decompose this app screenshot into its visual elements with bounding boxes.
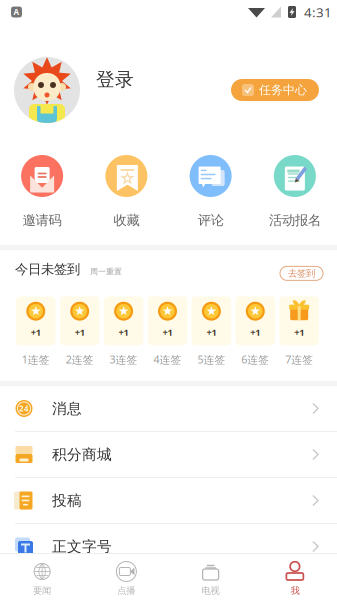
staticText: +1: [75, 326, 85, 338]
staticText: 去签到: [288, 268, 315, 279]
staticText: 任务中心: [259, 83, 307, 97]
staticText: 登录: [96, 68, 134, 91]
staticText: 电视: [202, 585, 220, 596]
staticText: 7连签: [285, 352, 313, 367]
button[interactable]: 投稿: [0, 478, 337, 523]
button[interactable]: 要闻: [0, 553, 84, 600]
staticText: 5连签: [197, 352, 225, 367]
staticText: 3连签: [110, 352, 138, 367]
button[interactable]: 我: [253, 553, 337, 600]
button[interactable]: 去签到: [280, 263, 323, 277]
staticText: 要闻: [33, 585, 51, 596]
button[interactable]: 活动报名: [253, 155, 337, 228]
button[interactable]: 评论: [168, 155, 253, 228]
staticText: +1: [31, 326, 41, 338]
button[interactable]: 邀请码: [0, 155, 84, 228]
button[interactable]: 收藏: [84, 155, 168, 228]
staticText: 6连签: [241, 352, 269, 367]
button[interactable]: 积分商城: [0, 432, 337, 477]
staticText: 消息: [52, 399, 82, 417]
button[interactable]: 24: [0, 386, 337, 431]
staticText: +1: [250, 326, 260, 338]
staticText: +1: [294, 326, 304, 338]
button[interactable]: 电视: [168, 553, 253, 600]
button[interactable]: 点播: [84, 553, 168, 600]
staticText: 正文字号: [52, 537, 112, 555]
staticText: 周一重置: [90, 267, 122, 276]
staticText: 邀请码: [23, 212, 62, 228]
staticText: 我: [290, 585, 299, 596]
staticText: 评论: [198, 212, 224, 228]
staticText: +1: [162, 326, 172, 338]
staticText: 今日未签到: [15, 261, 80, 277]
staticText: 4连签: [153, 352, 181, 367]
staticText: 点播: [117, 585, 135, 596]
staticText: +1: [206, 326, 216, 338]
staticText: 2连签: [66, 352, 94, 367]
staticText: 投稿: [52, 491, 82, 509]
staticText: 积分商城: [52, 445, 112, 463]
staticText: 4:31: [304, 3, 332, 21]
button[interactable]: 任务中心: [231, 79, 319, 101]
staticText: 收藏: [113, 212, 139, 228]
staticText: 1连签: [22, 352, 50, 367]
staticText: 活动报名: [269, 212, 321, 228]
staticText: +1: [119, 326, 129, 338]
staticText: 24: [19, 403, 29, 414]
staticText: A: [13, 7, 19, 17]
button[interactable]: 正文字号: [0, 524, 337, 569]
